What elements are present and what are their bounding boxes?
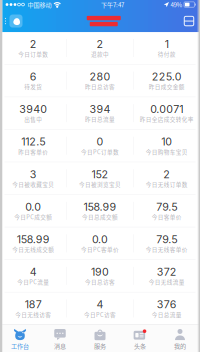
staticText: 昨日总访客 <box>85 82 115 91</box>
staticText: 190 <box>91 265 109 278</box>
staticText: 今日订单数 <box>18 50 48 58</box>
button[interactable]: 我的 <box>160 325 200 352</box>
button[interactable]: 消息 <box>40 325 80 352</box>
staticText: 4 <box>96 298 103 311</box>
staticText: 280 <box>89 70 110 83</box>
staticText: 待发货 <box>24 82 42 91</box>
button[interactable]: 79.5 <box>134 195 200 227</box>
staticText: 372 <box>157 265 177 278</box>
staticText: 我的 <box>174 341 186 350</box>
staticText: 6 <box>30 70 37 83</box>
button[interactable]: 头条 <box>120 325 160 352</box>
button[interactable]: 6 <box>0 65 66 97</box>
staticText: 0.0071 <box>150 103 183 116</box>
button[interactable]: 280 <box>67 65 133 97</box>
staticText: 出售中 <box>24 115 42 123</box>
button[interactable]: Shop <box>0 11 24 30</box>
staticText: 112.5 <box>21 135 45 148</box>
staticText: 0.0 <box>25 200 41 213</box>
staticText: 昨日总流量 <box>85 115 115 123</box>
staticText: 4 <box>30 265 37 278</box>
button[interactable]: 158.99 <box>0 227 66 259</box>
staticText: 376 <box>157 298 177 311</box>
staticText: 今日无线访客 <box>15 310 51 318</box>
button[interactable]: 158.99 <box>67 195 133 227</box>
button[interactable]: 376 <box>134 292 200 324</box>
button[interactable]: 4 <box>0 260 66 292</box>
staticText: 今日无线成交额 <box>12 245 54 253</box>
staticText: 今日PC流量 <box>17 278 49 286</box>
staticText: 2 <box>30 38 37 50</box>
staticText: 下午7:47 <box>101 0 124 9</box>
staticText: 待付款 <box>158 50 176 58</box>
staticText: 今日PC订单数 <box>81 148 119 156</box>
button[interactable]: 112.5 <box>0 130 66 162</box>
button[interactable]: 394 <box>67 97 133 129</box>
staticText: 今日被收藏宝贝 <box>12 180 54 188</box>
button[interactable]: 372 <box>134 260 200 292</box>
staticText: 79.5 <box>156 233 177 246</box>
button[interactable]: 1 <box>134 32 200 64</box>
staticText: 今日被浏览宝贝 <box>79 180 121 188</box>
staticText: 今日无线订单数 <box>146 180 188 188</box>
staticText: 3 <box>30 168 37 181</box>
button[interactable]: 2 <box>134 162 200 194</box>
button[interactable]: 225.0 <box>134 65 200 97</box>
staticText: 158.99 <box>83 200 116 213</box>
staticText: 2 <box>163 168 170 181</box>
staticText: 今日PC访客 <box>84 310 116 318</box>
button[interactable]: 10 <box>134 130 200 162</box>
button[interactable]: 79.5 <box>134 227 200 259</box>
staticText: 今日PC成交额 <box>14 213 52 221</box>
button[interactable]: 工作台 <box>0 325 40 352</box>
button[interactable]: 190 <box>67 260 133 292</box>
staticText: 0.0 <box>92 233 108 246</box>
staticText: 3940 <box>19 103 47 116</box>
staticText: 394 <box>89 103 110 116</box>
button[interactable]: 0.0071 <box>134 97 200 129</box>
button[interactable]: 2 <box>0 32 66 64</box>
staticText: 今日客单价 <box>152 213 182 221</box>
staticText: 10 <box>161 135 172 148</box>
button[interactable]: 3 <box>0 162 66 194</box>
staticText: 152 <box>91 168 108 181</box>
staticText: 服务 <box>94 341 106 350</box>
staticText: 79.5 <box>156 200 177 213</box>
button[interactable]: 服务 <box>80 325 120 352</box>
button[interactable]: 0 <box>67 130 133 162</box>
staticText: 今日购物车宝贝 <box>146 148 188 156</box>
staticText: 今日总成交额 <box>82 213 118 221</box>
button[interactable]: More <box>183 11 200 30</box>
button[interactable]: 0.0 <box>0 195 66 227</box>
button[interactable]: 0.0 <box>67 227 133 259</box>
staticText: 工作台 <box>11 341 29 350</box>
staticText: 今日PC客单价 <box>81 245 119 253</box>
button[interactable]: 187 <box>0 292 66 324</box>
staticText: 昨日成交金额 <box>149 82 185 91</box>
button[interactable]: 152 <box>67 162 133 194</box>
staticText: 今日无线流量 <box>149 278 185 286</box>
staticText: 225.0 <box>152 70 182 83</box>
button[interactable]: 2 <box>67 32 133 64</box>
staticText: 中国移动 <box>27 0 51 9</box>
staticText: 今日总流量 <box>152 310 182 318</box>
staticText: 1 <box>165 38 169 50</box>
staticText: 退款中 <box>91 50 109 58</box>
staticText: 昨日全店成交转化率 <box>140 115 194 123</box>
staticText: 0 <box>96 135 103 148</box>
staticText: 今日无线客单价 <box>146 245 188 253</box>
button[interactable]: 4 <box>67 292 133 324</box>
staticText: 49% <box>170 0 182 9</box>
button[interactable]: 3940 <box>0 97 66 129</box>
staticText: 187 <box>25 298 42 311</box>
staticText: 消息 <box>54 341 66 350</box>
staticText: 昨日客单价 <box>18 148 48 156</box>
staticText: 头条 <box>134 341 146 350</box>
staticText: 2 <box>96 38 103 50</box>
staticText: 今日总访客 <box>85 278 115 286</box>
staticText: 158.99 <box>17 233 50 246</box>
